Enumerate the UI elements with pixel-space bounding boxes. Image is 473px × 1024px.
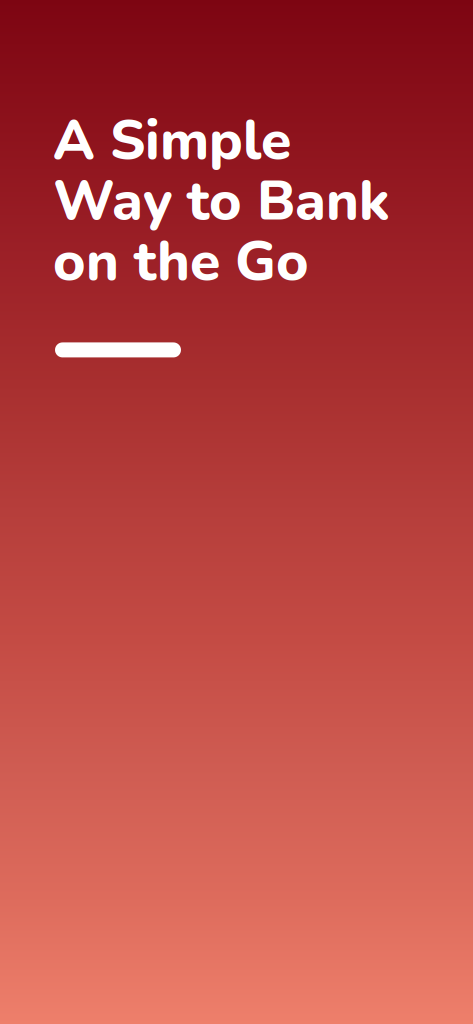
staticText: A Simple [53,103,291,178]
staticText: Way to Bank [53,163,390,239]
staticText: on the Go [53,224,309,299]
